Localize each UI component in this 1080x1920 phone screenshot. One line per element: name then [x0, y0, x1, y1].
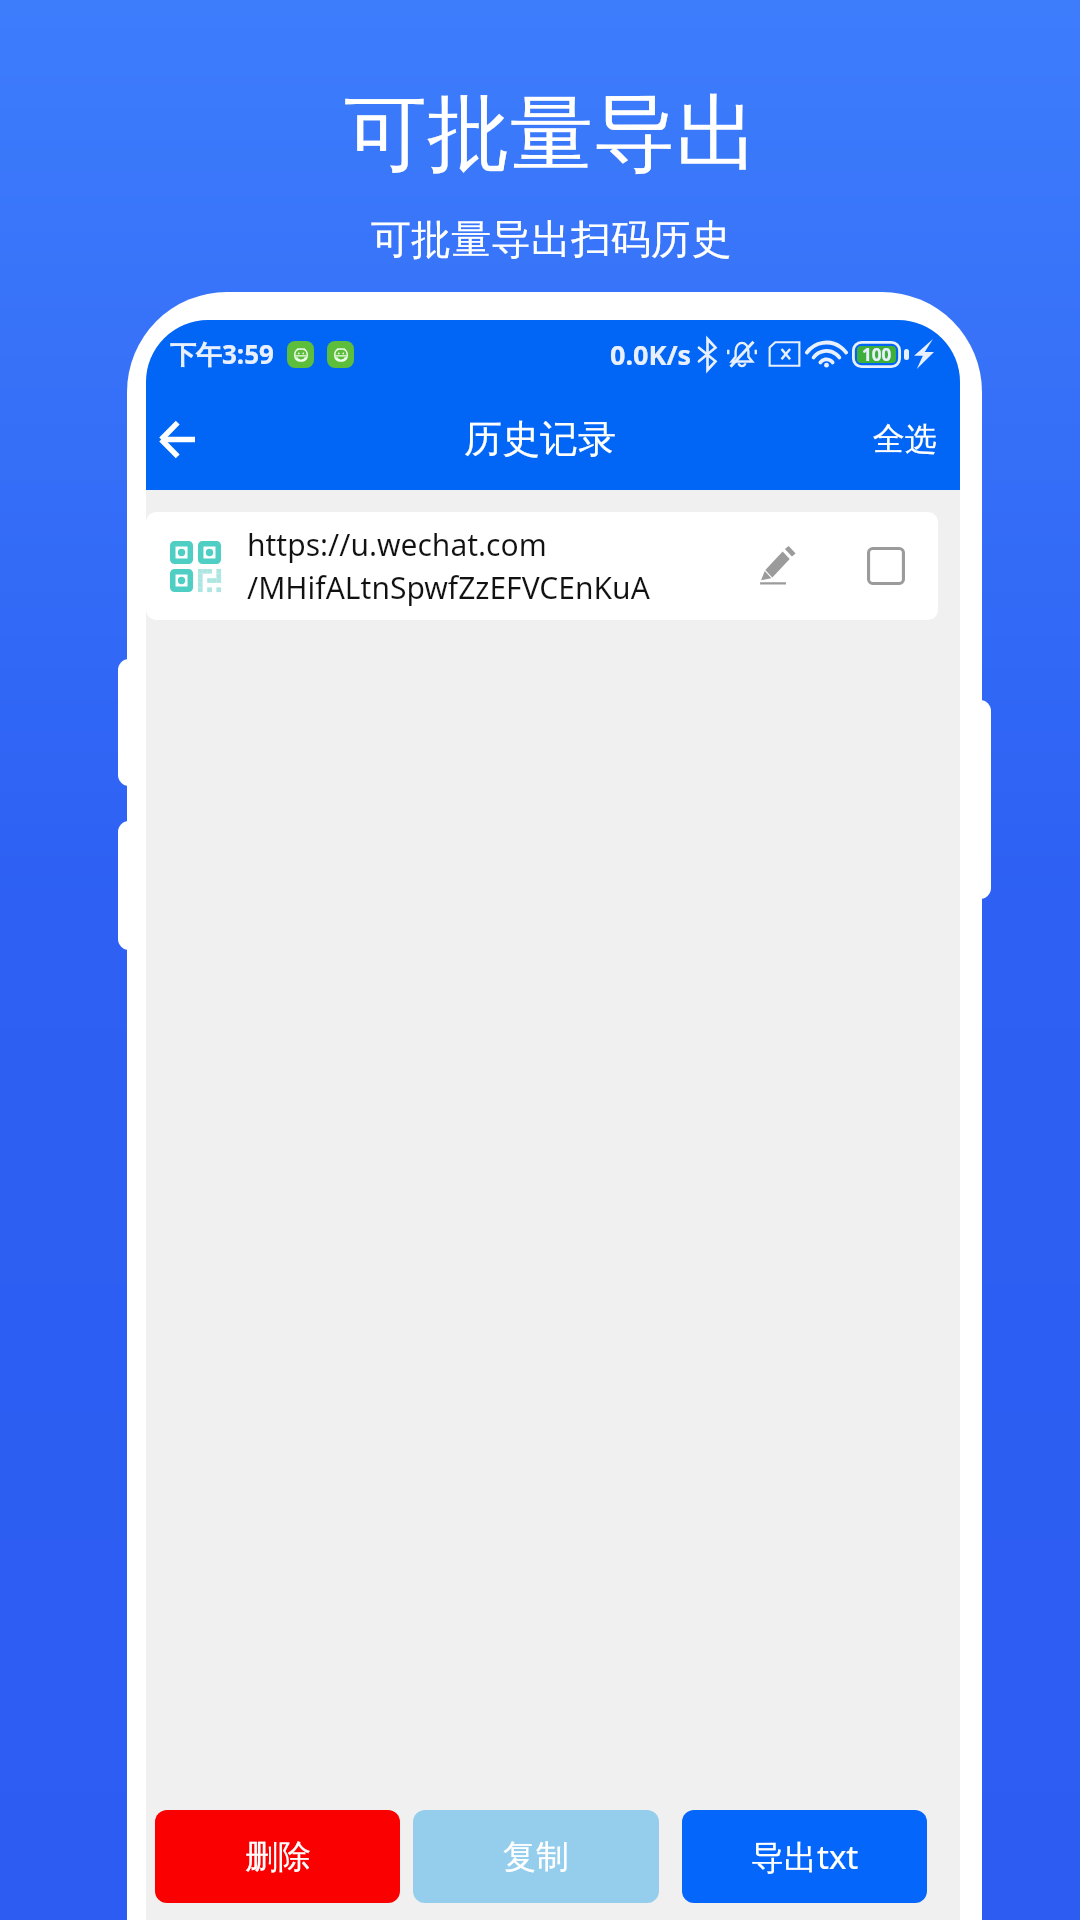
staticText: 下午3:59: [170, 336, 274, 372]
button[interactable]: 编辑: [739, 528, 815, 604]
button[interactable]: 全选: [850, 397, 960, 481]
staticText: 100: [862, 343, 892, 366]
staticText: 0.0K/s: [610, 336, 692, 373]
staticText: 可批量导出扫码历史: [371, 214, 731, 264]
button[interactable]: 导出txt: [682, 1810, 927, 1903]
button[interactable]: https://u.wechat.com: [146, 512, 938, 620]
button[interactable]: 删除: [155, 1810, 400, 1903]
staticText: 全选: [873, 419, 937, 459]
staticText: 可批量导出: [344, 82, 759, 187]
staticText: https://u.wechat.com: [247, 524, 547, 565]
staticText: 导出txt: [751, 1834, 859, 1879]
staticText: 删除: [245, 1836, 311, 1878]
button[interactable]: 选择: [848, 528, 924, 604]
button[interactable]: 复制: [413, 1810, 659, 1903]
button[interactable]: 返回: [146, 403, 213, 475]
staticText: 复制: [503, 1836, 569, 1878]
staticText: /MHifALtnSpwfZzEFVCEnKuA: [247, 567, 650, 608]
staticText: 历史记录: [464, 415, 616, 463]
